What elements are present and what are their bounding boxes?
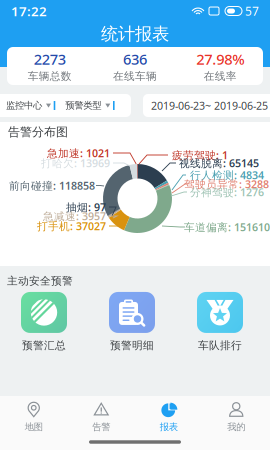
staticText: 报表 — [160, 421, 178, 433]
staticText: 抽烟: 97 — [66, 200, 106, 214]
button[interactable]: 告警 — [67, 401, 135, 433]
staticText: 地图 — [25, 421, 43, 433]
staticText: 监控中心 — [6, 100, 42, 111]
button[interactable]: 预警汇总 — [0, 292, 88, 352]
staticText: 636 — [123, 49, 147, 69]
staticText: 行人检测: 4834 — [190, 168, 264, 182]
button[interactable]: 我的 — [202, 401, 270, 433]
staticText: 预警类型 — [65, 100, 101, 111]
staticText: 告警 — [92, 421, 110, 433]
staticText: 车队排行 — [198, 339, 242, 352]
staticText: 17:22 — [11, 2, 47, 20]
button[interactable]: 2019-06-23~ 2019-06-25 — [143, 94, 270, 117]
staticText: 驾驶员异常: 3288 — [184, 177, 269, 191]
staticText: 在线率 — [204, 70, 237, 83]
staticText: 急减速: 3957 — [43, 209, 106, 223]
staticText: 2273 — [34, 49, 66, 69]
staticText: 统计报表 — [101, 23, 169, 45]
staticText: 打哈欠: 13969 — [41, 156, 110, 170]
button[interactable]: 监控中心 — [6, 100, 55, 111]
staticText: 在线车辆 — [113, 70, 157, 83]
button[interactable]: 预警类型 — [65, 100, 115, 111]
staticText: 2019-06-23~ 2019-06-25 — [151, 98, 268, 113]
button[interactable]: 地图 — [0, 401, 67, 433]
staticText: 前向碰撞: 118858 — [9, 178, 95, 193]
staticText: 主动安全预警 — [7, 274, 73, 287]
staticText: 车辆总数 — [28, 70, 72, 83]
staticText: 预警明细 — [110, 339, 154, 352]
staticText: 急加速: 1021 — [47, 146, 110, 160]
staticText: 视线脱离: 65145 — [179, 156, 259, 170]
button[interactable]: 报表 — [135, 401, 202, 433]
staticText: 27.98% — [196, 49, 244, 69]
staticText: 疲劳驾驶: 1 — [172, 148, 228, 162]
button[interactable]: 预警明细 — [88, 292, 176, 352]
staticText: 分神驾驶: 1276 — [190, 185, 264, 199]
staticText: 车道偏离: 151610 — [184, 220, 270, 234]
staticText: 预警汇总 — [22, 339, 66, 352]
staticText: 打手机: 37027 — [37, 219, 106, 233]
staticText: 57 — [245, 3, 259, 19]
staticText: 告警分布图 — [8, 125, 68, 139]
button[interactable]: 车队排行 — [176, 292, 264, 352]
staticText: 我的 — [227, 421, 245, 433]
